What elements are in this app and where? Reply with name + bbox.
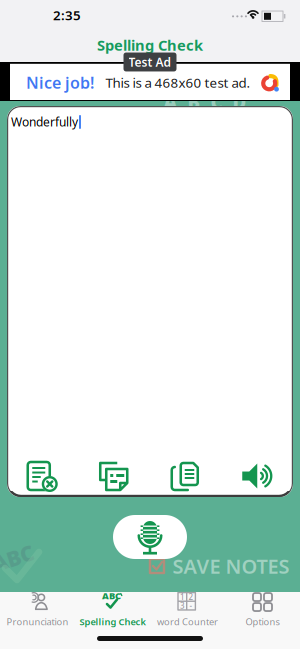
staticText: Wonderfully xyxy=(11,114,78,130)
staticText: 3 xyxy=(180,600,185,611)
button[interactable]: Copy xyxy=(150,459,221,495)
staticText: 2 xyxy=(188,591,193,602)
button[interactable]: Clear text xyxy=(7,459,78,495)
staticText: This is a 468x60 test ad. xyxy=(105,74,250,91)
staticText: Pronunciation xyxy=(6,616,68,628)
staticText: - xyxy=(189,600,192,611)
staticText: 1 xyxy=(180,591,185,602)
staticText: Test Ad xyxy=(128,54,171,70)
staticText: Nice job! xyxy=(26,72,94,93)
staticText: Spelling Check xyxy=(97,35,203,55)
staticText: ABC xyxy=(0,544,34,572)
staticText: ABC xyxy=(102,589,121,602)
staticText: A B C D xyxy=(163,90,246,114)
staticText: SAVE NOTES xyxy=(172,553,289,579)
button[interactable]: ABC xyxy=(75,591,150,629)
button[interactable]: Paste xyxy=(78,459,150,495)
button[interactable]: Pronunciation xyxy=(0,591,75,629)
button[interactable]: Dictate xyxy=(113,515,187,559)
button[interactable]: Speak text xyxy=(221,459,293,495)
staticText: Spelling Check xyxy=(79,616,145,628)
staticText: Options xyxy=(245,616,279,628)
button[interactable]: 1 xyxy=(150,591,225,629)
staticText: 2:35 xyxy=(53,6,81,24)
staticText: word Counter xyxy=(157,616,218,628)
button[interactable]: Test advertisement xyxy=(0,62,300,101)
button[interactable]: Options xyxy=(225,591,300,629)
